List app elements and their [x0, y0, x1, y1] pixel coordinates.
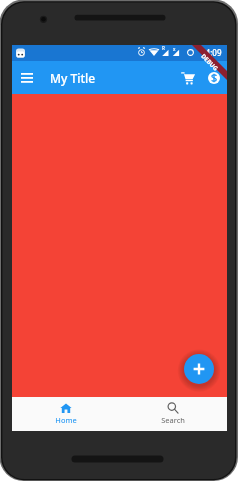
- button[interactable]: Open navigation menu: [14, 65, 40, 91]
- button[interactable]: Home: [12, 397, 119, 431]
- staticText: x: [173, 46, 176, 52]
- button[interactable]: Cart: [175, 65, 201, 91]
- button[interactable]: Payments: [201, 65, 227, 91]
- staticText: 14:09: [201, 47, 222, 58]
- button[interactable]: Add: [184, 354, 214, 384]
- staticText: Search: [161, 415, 185, 425]
- staticText: My Title: [50, 70, 96, 86]
- staticText: Home: [55, 415, 77, 425]
- staticText: DEBUG: [199, 52, 220, 73]
- button[interactable]: Search: [119, 397, 227, 431]
- staticText: R: [162, 45, 165, 51]
